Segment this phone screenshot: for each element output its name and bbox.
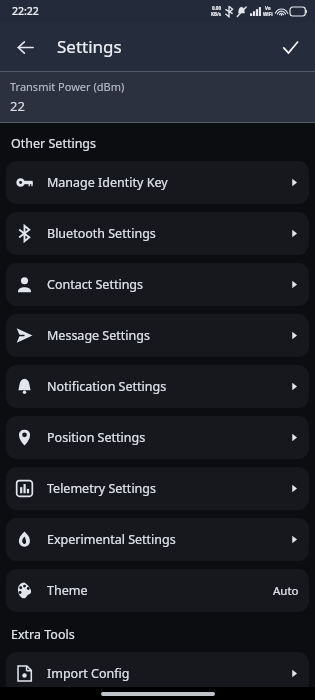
- button[interactable]: Save: [273, 30, 307, 64]
- staticText: Extra Tools: [11, 626, 75, 643]
- staticText: Contact Settings: [47, 276, 290, 293]
- button[interactable]: Position Settings: [6, 416, 309, 459]
- button[interactable]: Manage Identity Key: [6, 161, 309, 204]
- staticText: Bluetooth Settings: [47, 225, 290, 242]
- staticText: KB/s: [211, 11, 222, 17]
- staticText: Theme: [47, 582, 273, 599]
- button[interactable]: Bluetooth Settings: [6, 212, 309, 255]
- button[interactable]: Message Settings: [6, 314, 309, 357]
- staticText: Position Settings: [47, 429, 290, 446]
- staticText: Other Settings: [11, 135, 97, 152]
- staticText: 0.00: [212, 5, 221, 11]
- staticText: Import Config: [47, 665, 290, 682]
- staticText: Settings: [57, 35, 122, 58]
- staticText: Transmit Power (dBm): [10, 79, 125, 94]
- staticText: WiFi: [263, 11, 273, 17]
- button[interactable]: Notification Settings: [6, 365, 309, 408]
- staticText: Auto: [273, 583, 299, 599]
- staticText: Vo: [265, 5, 271, 11]
- button[interactable]: Contact Settings: [6, 263, 309, 306]
- button[interactable]: Theme: [6, 569, 309, 612]
- button[interactable]: Import Config: [6, 652, 309, 695]
- staticText: 22:22: [12, 4, 39, 18]
- staticText: Experimental Settings: [47, 531, 290, 548]
- button[interactable]: Telemetry Settings: [6, 467, 309, 510]
- button[interactable]: Back: [8, 30, 42, 64]
- staticText: Telemetry Settings: [47, 480, 290, 497]
- button[interactable]: Experimental Settings: [6, 518, 309, 561]
- staticText: Manage Identity Key: [47, 174, 290, 191]
- staticText: Notification Settings: [47, 378, 290, 395]
- staticText: Message Settings: [47, 327, 290, 344]
- staticText: 22: [10, 97, 25, 115]
